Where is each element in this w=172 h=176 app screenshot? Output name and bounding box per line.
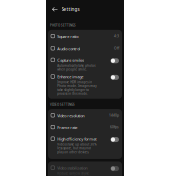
staticText: High efficiency format xyxy=(57,136,96,142)
button[interactable]: Enhance image xyxy=(48,70,122,99)
staticText: Improve HDR images in Photo mode. Images… xyxy=(57,80,96,96)
staticText: Video stabilization xyxy=(57,165,87,171)
staticText: VIDEO SETTINGS xyxy=(50,103,75,107)
staticText: Audio control xyxy=(57,46,80,51)
staticText: Off xyxy=(114,46,119,50)
staticText: Reduce camera shake when recording video… xyxy=(57,171,93,176)
staticText: Settings xyxy=(61,6,79,12)
staticText: 4:3 xyxy=(114,34,119,38)
staticText: PHOTO SETTINGS xyxy=(50,23,76,27)
staticText: Videos take up about 30% less space, but… xyxy=(57,142,96,154)
staticText: Capture smiles xyxy=(57,57,84,63)
staticText: 60fps xyxy=(110,125,119,129)
button[interactable]: Video resolution xyxy=(48,109,122,121)
button[interactable]: Frame rate xyxy=(48,121,122,132)
staticText: 1440p xyxy=(109,113,119,117)
button[interactable]: Audio control xyxy=(48,42,122,54)
button[interactable]: Capture smiles xyxy=(48,54,122,70)
staticText: Square ratio xyxy=(57,34,78,39)
staticText: Enhance image xyxy=(57,74,83,79)
staticText: Automatically take photos when people sm… xyxy=(57,64,95,71)
button[interactable]: Square ratio xyxy=(48,30,122,42)
button[interactable]: Back xyxy=(46,2,61,16)
staticText: Frame rate xyxy=(57,125,77,130)
button[interactable]: High efficiency format xyxy=(48,132,122,159)
staticText: Video resolution xyxy=(57,113,84,118)
button[interactable]: Video stabilization xyxy=(48,161,122,176)
